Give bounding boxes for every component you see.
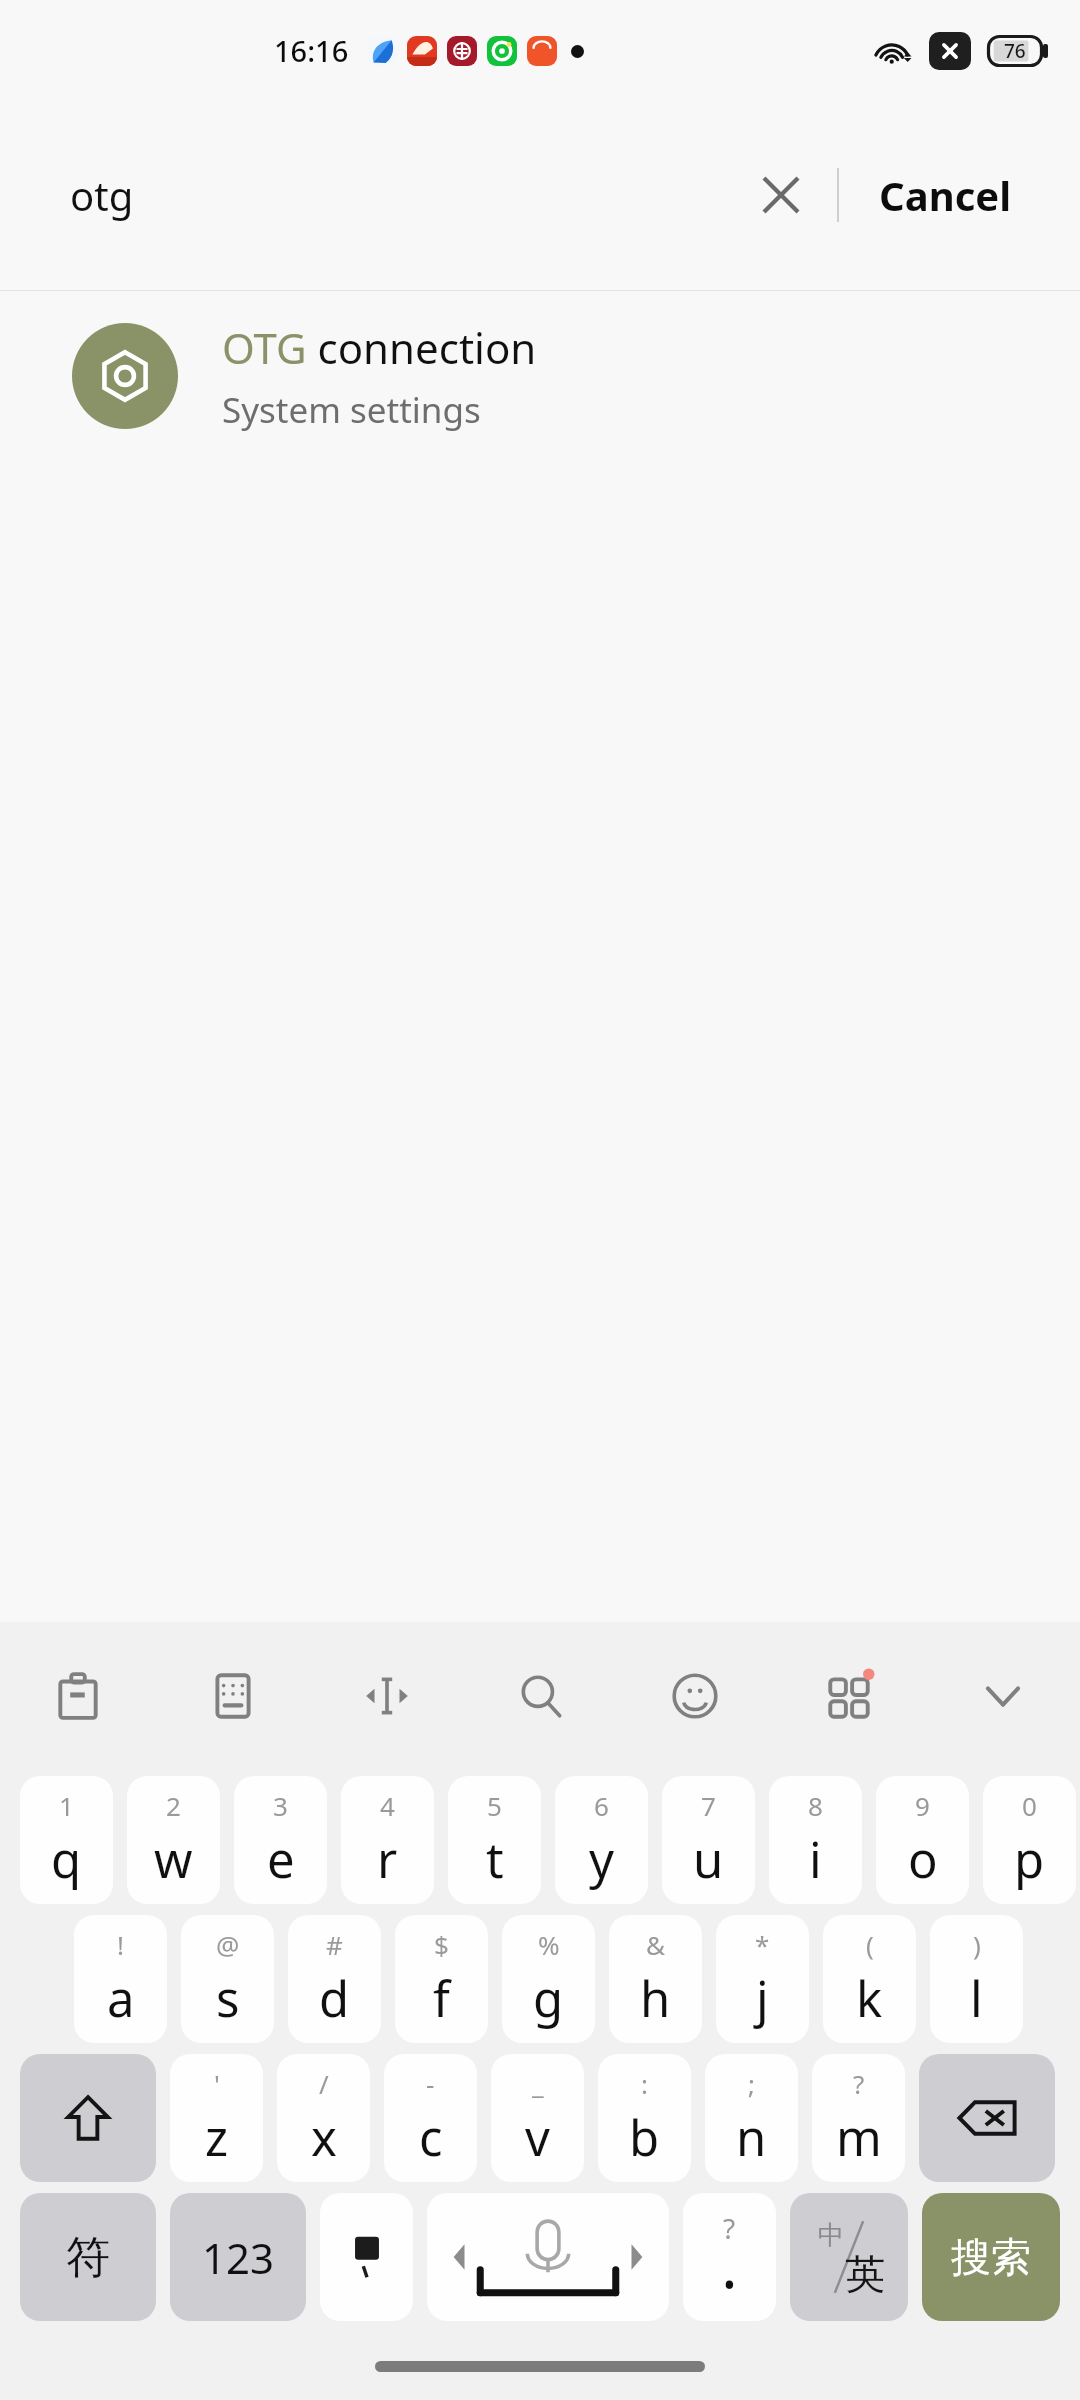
button[interactable]: 123 (170, 2193, 306, 2321)
button[interactable]: More options (772, 1622, 926, 1770)
staticText: w (154, 1826, 193, 1893)
staticText: t (486, 1826, 504, 1893)
button[interactable]: $ (395, 1915, 488, 2043)
button[interactable]: & (609, 1915, 702, 2043)
button[interactable]: 6 (555, 1776, 648, 1904)
button[interactable]: Emoji (618, 1622, 772, 1770)
staticText: k (856, 1965, 883, 2032)
staticText: p (1014, 1826, 1045, 1893)
staticText: g (533, 1965, 564, 2032)
staticText: OTG connection (222, 319, 537, 376)
button[interactable]: 4 (341, 1776, 434, 1904)
staticText: b (629, 2104, 660, 2171)
staticText: - (426, 2066, 435, 2101)
staticText: ! (117, 1927, 124, 1962)
button[interactable]: 7 (662, 1776, 755, 1904)
staticText: v (525, 2104, 550, 2171)
button[interactable]: 2 (127, 1776, 220, 1904)
button[interactable]: Clear text (739, 153, 823, 237)
staticText: _ (532, 2066, 544, 2101)
staticText: System settings (222, 386, 481, 434)
staticText: o (908, 1826, 938, 1893)
staticText: / (319, 2066, 329, 2101)
button[interactable]: Shift (20, 2054, 156, 2182)
staticText: * (755, 1927, 770, 1962)
staticText: a (107, 1965, 135, 2032)
button[interactable]: 5 (448, 1776, 541, 1904)
staticText: 5 (487, 1788, 502, 1823)
button[interactable]: - (384, 2054, 477, 2182)
staticText: n (736, 2104, 767, 2171)
button[interactable]: Hide keyboard (926, 1622, 1080, 1770)
button[interactable]: Cancel (873, 154, 1018, 236)
button[interactable]: ) (930, 1915, 1023, 2043)
staticText: 7 (701, 1788, 716, 1823)
button[interactable]: 9 (876, 1776, 969, 1904)
button[interactable]: ? (683, 2193, 776, 2321)
button[interactable]: Switch input (320, 2193, 413, 2321)
staticText: q (51, 1826, 82, 1893)
staticText: e (267, 1826, 295, 1893)
button[interactable]: _ (491, 2054, 584, 2182)
staticText: d (319, 1965, 350, 2032)
button[interactable]: # (288, 1915, 381, 2043)
button[interactable]: ? (812, 2054, 905, 2182)
button[interactable]: @ (181, 1915, 274, 2043)
staticText: otg (70, 168, 134, 222)
staticText: 9 (915, 1788, 930, 1823)
button[interactable]: : (598, 2054, 691, 2182)
staticText: l (970, 1965, 983, 2032)
staticText: $ (434, 1927, 449, 1962)
button[interactable]: Keyboard settings (155, 1622, 310, 1770)
staticText: % (538, 1927, 560, 1962)
button[interactable]: Clipboard (0, 1622, 155, 1770)
button[interactable]: Chinese English toggle (790, 2193, 908, 2321)
button[interactable]: ' (170, 2054, 263, 2182)
staticText: 符 (66, 2230, 110, 2285)
button[interactable]: ! (74, 1915, 167, 2043)
button[interactable]: 1 (20, 1776, 113, 1904)
staticText: 英 (845, 2249, 885, 2299)
other: No SIM (929, 32, 971, 70)
staticText: ( (866, 1927, 874, 1962)
staticText: h (640, 1965, 671, 2032)
button[interactable]: 符 (20, 2193, 156, 2321)
staticText: y (589, 1826, 614, 1893)
button[interactable]: / (277, 2054, 370, 2182)
staticText: 76 (1004, 38, 1026, 64)
button[interactable]: % (502, 1915, 595, 2043)
button[interactable]: 3 (234, 1776, 327, 1904)
staticText: 搜索 (951, 2232, 1031, 2282)
button[interactable]: * (716, 1915, 809, 2043)
staticText: c (419, 2104, 443, 2171)
staticText: 中 (818, 2219, 844, 2252)
staticText: 16:16 (274, 31, 349, 70)
button[interactable]: 0 (983, 1776, 1076, 1904)
staticText: 6 (594, 1788, 609, 1823)
staticText: 1 (59, 1788, 74, 1823)
other: Battery 76 percent (987, 35, 1043, 67)
staticText: & (646, 1927, 666, 1962)
button[interactable]: 搜索 (922, 2193, 1060, 2321)
staticText: 0 (1022, 1788, 1037, 1823)
button[interactable]: ( (823, 1915, 916, 2043)
staticText: : (641, 2066, 648, 2101)
staticText: x (311, 2104, 337, 2171)
staticText: # (326, 1927, 343, 1962)
staticText: i (809, 1826, 822, 1893)
button[interactable]: Space (427, 2193, 669, 2321)
button[interactable]: Search (464, 1622, 618, 1770)
button[interactable]: OTG connection (0, 291, 1080, 461)
other: Wi-Fi (875, 36, 913, 66)
button[interactable]: ; (705, 2054, 798, 2182)
staticText: • (723, 2261, 736, 2307)
staticText: 8 (808, 1788, 823, 1823)
staticText: z (205, 2104, 229, 2171)
button[interactable]: 8 (769, 1776, 862, 1904)
staticText: j (756, 1965, 769, 2032)
staticText: ' (214, 2066, 220, 2101)
staticText: 2 (166, 1788, 181, 1823)
button[interactable]: Backspace (919, 2054, 1055, 2182)
button[interactable]: Move cursor (310, 1622, 464, 1770)
staticText: 4 (380, 1788, 395, 1823)
